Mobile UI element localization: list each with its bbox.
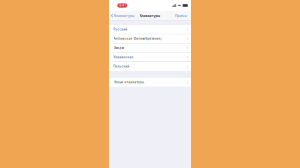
staticText: Английская (Великобритания) (114, 37, 162, 40)
button[interactable]: Польский (109, 62, 191, 71)
staticText: Украинская (114, 55, 134, 59)
button[interactable]: Клавиатуры (111, 14, 134, 18)
staticText: Русский (114, 28, 128, 31)
staticText: Правка (175, 14, 187, 18)
button[interactable]: Новые клавиатуры... (109, 78, 191, 87)
staticText: Эмодзи (114, 46, 125, 50)
button[interactable]: Правка (175, 14, 187, 18)
button[interactable]: Русский (109, 25, 191, 34)
button[interactable]: Английская (Великобритания) (109, 34, 191, 43)
staticText: Клавиатуры (139, 14, 160, 18)
staticText: Польский (114, 65, 130, 68)
staticText: Новые клавиатуры... (114, 81, 147, 84)
staticText: Клавиатуры (114, 14, 134, 18)
staticText: 9:41 (119, 4, 125, 7)
button[interactable]: Украинская (109, 53, 191, 62)
button[interactable]: Эмодзи (109, 43, 191, 52)
